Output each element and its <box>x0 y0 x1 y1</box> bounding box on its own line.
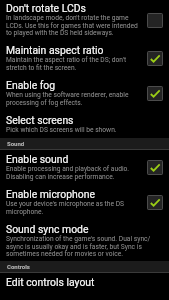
staticText: Enable processing and playback of audio.… <box>6 165 142 180</box>
staticText: Maintain aspect ratio <box>6 44 104 56</box>
staticText: In landscape mode, don't rotate the game… <box>6 14 142 36</box>
button[interactable]: Enabled checkbox <box>147 51 163 66</box>
staticText: Enable microphone <box>6 188 95 200</box>
button[interactable]: Enabled checkbox <box>147 86 163 101</box>
staticText: Enable fog <box>6 79 56 91</box>
staticText: Enable sound <box>6 153 69 165</box>
staticText: Use your device's microphone as the DS m… <box>6 200 142 215</box>
button[interactable]: Maintain aspect ratio <box>0 40 169 75</box>
button[interactable]: Enabled checkbox <box>147 160 163 175</box>
button[interactable]: Don't rotate LCDs <box>0 0 169 40</box>
button[interactable]: Enabled checkbox <box>147 195 163 210</box>
staticText: Sound sync mode <box>6 223 89 235</box>
staticText: Don't rotate LCDs <box>6 2 86 14</box>
button[interactable]: Enable microphone <box>0 184 169 219</box>
staticText: Synchronization of the game's sound. Dua… <box>6 235 163 257</box>
button[interactable]: Sound sync mode <box>0 219 169 261</box>
staticText: Select screens <box>6 114 74 126</box>
staticText: Pick which DS screens will be shown. <box>6 126 117 134</box>
staticText: When using the software renderer, enable… <box>6 91 142 106</box>
button[interactable]: Edit controls layout <box>0 273 169 292</box>
staticText: Controls <box>7 263 30 270</box>
button[interactable]: Enable fog <box>0 75 169 110</box>
button[interactable]: Select screens <box>0 110 169 138</box>
staticText: Sound <box>7 140 25 147</box>
staticText: Edit controls layout <box>6 276 95 288</box>
staticText: Maintain the aspect ratio of the DS; don… <box>6 56 142 71</box>
button[interactable]: Enable sound <box>0 150 169 184</box>
button[interactable]: Disabled checkbox <box>147 13 163 28</box>
